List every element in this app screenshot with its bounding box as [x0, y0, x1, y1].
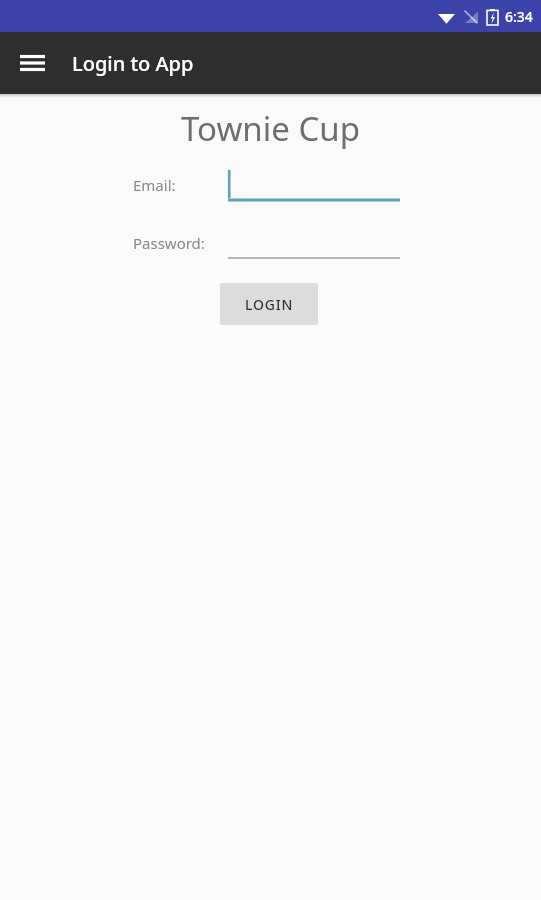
button[interactable]: Email: — [228, 167, 400, 203]
staticText: 6:34 — [505, 7, 533, 26]
button[interactable]: Password: — [228, 225, 400, 261]
button[interactable]: LOGIN — [220, 283, 318, 325]
staticText: Email: — [133, 175, 176, 195]
staticText: Townie Cup — [0, 106, 541, 151]
staticText: LOGIN — [245, 295, 294, 314]
staticText: Login to App — [72, 50, 194, 77]
staticText: Password: — [133, 233, 205, 253]
button[interactable]: Open navigation menu — [8, 39, 56, 87]
